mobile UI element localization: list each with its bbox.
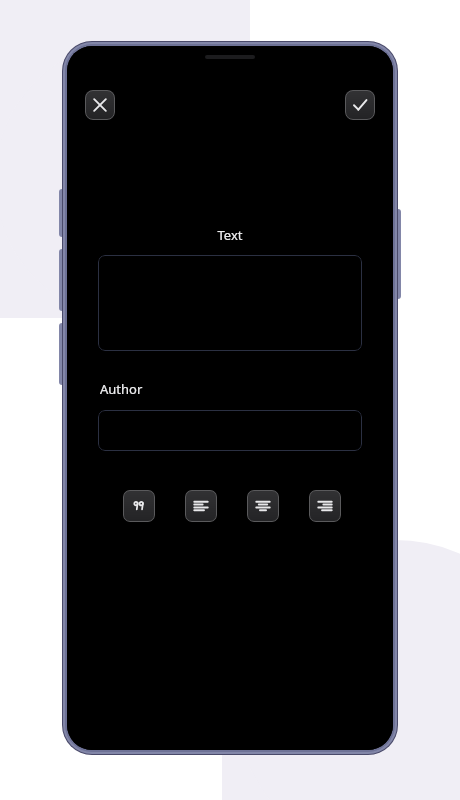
button[interactable] (98, 410, 362, 451)
staticText: Author (100, 380, 143, 398)
staticText: Text (67, 226, 393, 244)
button[interactable]: Align right (309, 490, 341, 522)
button[interactable]: Quote style (123, 490, 155, 522)
button[interactable] (98, 255, 362, 351)
button[interactable]: Save (345, 90, 375, 120)
button[interactable]: Align left (185, 490, 217, 522)
button[interactable]: Close (85, 90, 115, 120)
button[interactable]: Align center (247, 490, 279, 522)
